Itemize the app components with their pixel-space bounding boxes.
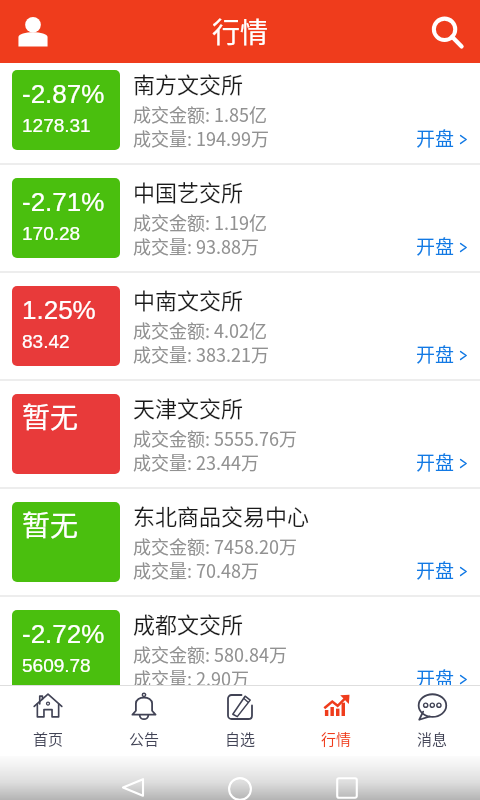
staticText: 行情 <box>321 728 352 750</box>
staticText: 天津文交所 <box>133 391 244 423</box>
staticText: 南方文交所 <box>133 67 244 99</box>
staticText: 成交量: 2.90万 <box>133 665 250 685</box>
staticText: 成交量: 70.48万 <box>133 557 259 583</box>
button[interactable]: 开盘 <box>416 124 480 163</box>
button[interactable]: 行情 <box>288 686 384 756</box>
button[interactable]: 开盘 <box>416 664 480 685</box>
staticText: 成交金额: 7458.20万 <box>133 533 297 559</box>
staticText: 83.42 <box>22 331 70 352</box>
button[interactable]: -2.87% <box>0 63 480 163</box>
button[interactable]: Home <box>228 777 252 800</box>
staticText: 开盘 <box>416 232 455 260</box>
button[interactable]: Back <box>122 776 144 798</box>
button[interactable]: -2.72% <box>0 597 480 685</box>
staticText: 成交量: 23.44万 <box>133 449 259 475</box>
button[interactable]: 开盘 <box>416 448 480 487</box>
staticText: 东北商品交易中心 <box>133 499 310 531</box>
button[interactable]: 公告 <box>96 686 192 756</box>
staticText: 中国艺交所 <box>133 175 244 207</box>
staticText: -2.72% <box>22 619 105 648</box>
button[interactable]: 开盘 <box>416 340 480 379</box>
staticText: 成都文交所 <box>133 607 244 639</box>
button[interactable]: 消息 <box>384 686 480 756</box>
button[interactable]: Search <box>417 0 480 63</box>
staticText: 开盘 <box>416 664 455 685</box>
staticText: 成交量: 93.88万 <box>133 233 259 259</box>
button[interactable]: 1.25% <box>0 273 480 379</box>
staticText: 消息 <box>417 728 448 750</box>
staticText: 成交金额: 580.84万 <box>133 641 287 667</box>
button[interactable]: 暂无 <box>0 381 480 487</box>
staticText: 170.28 <box>22 223 81 244</box>
staticText: -2.87% <box>22 79 105 108</box>
staticText: 成交金额: 4.02亿 <box>133 317 268 343</box>
staticText: 暂无 <box>22 396 79 437</box>
button[interactable]: -2.71% <box>0 165 480 271</box>
staticText: 公告 <box>129 728 160 750</box>
staticText: 成交金额: 5555.76万 <box>133 425 297 451</box>
button[interactable]: 开盘 <box>416 556 480 595</box>
button[interactable]: 首页 <box>0 686 96 756</box>
staticText: 中南文交所 <box>133 283 244 315</box>
button[interactable]: 暂无 <box>0 489 480 595</box>
button[interactable]: Recent apps <box>336 777 358 799</box>
staticText: -2.71% <box>22 187 105 216</box>
staticText: 1.25% <box>22 295 96 324</box>
staticText: 成交金额: 1.19亿 <box>133 209 268 235</box>
staticText: 开盘 <box>416 556 455 584</box>
button[interactable]: 开盘 <box>416 232 480 271</box>
button[interactable]: 自选 <box>192 686 288 756</box>
staticText: 自选 <box>225 728 256 750</box>
staticText: 暂无 <box>22 504 79 545</box>
staticText: 开盘 <box>416 448 455 476</box>
staticText: 成交量: 383.21万 <box>133 341 269 367</box>
staticText: 成交量: 194.99万 <box>133 125 269 151</box>
staticText: 首页 <box>33 728 64 750</box>
staticText: 1278.31 <box>22 115 91 136</box>
staticText: 开盘 <box>416 124 455 152</box>
staticText: 成交金额: 1.85亿 <box>133 101 268 127</box>
staticText: 5609.78 <box>22 655 91 676</box>
staticText: 开盘 <box>416 340 455 368</box>
staticText: 行情 <box>212 11 269 52</box>
button[interactable]: Profile <box>0 0 63 63</box>
